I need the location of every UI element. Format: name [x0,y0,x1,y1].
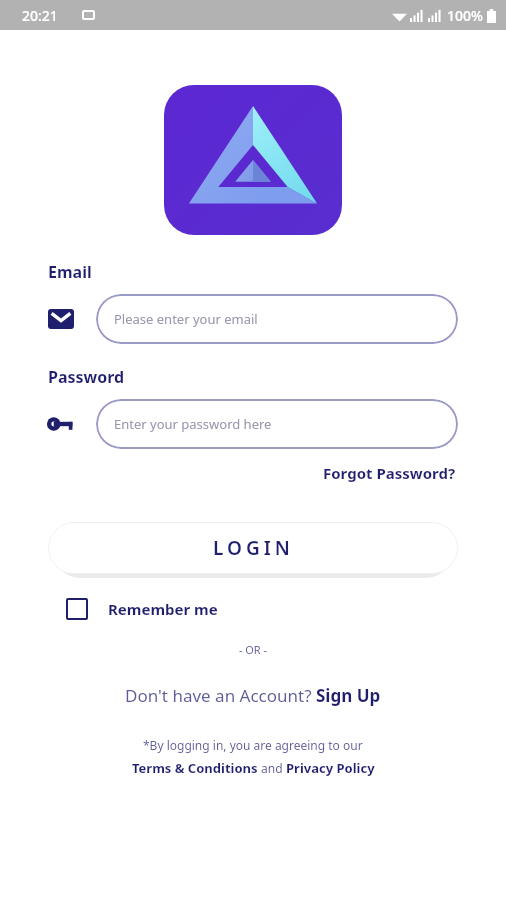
button[interactable]: Terms & Conditions [132,759,258,777]
button[interactable]: LOGIN [48,522,458,574]
staticText: Please enter your email [114,310,258,328]
staticText: *By logging in, you are agreeing to our [143,737,363,753]
staticText: 20:21 [22,6,58,25]
staticText: 100% [447,6,483,25]
staticText: Enter your password here [114,415,272,433]
button[interactable]: Remember me [66,598,506,620]
other: Password [44,407,78,441]
staticText: Email [48,261,92,283]
button[interactable]: Please enter your email [96,294,458,344]
button[interactable]: Forgot Password? [319,459,460,487]
button[interactable]: Sign Up [316,684,381,707]
staticText: Password [48,366,125,388]
staticText: - OR - [0,642,506,657]
staticText: LOGIN [213,535,294,561]
staticText: Remember me [108,599,218,619]
other: Email [44,302,78,336]
button[interactable]: Enter your password here [96,399,458,449]
button[interactable]: Don't have an Account? [125,684,316,707]
staticText: Forgot Password? [323,463,456,483]
button[interactable]: Privacy Policy [286,759,375,777]
staticText: and [258,760,286,776]
